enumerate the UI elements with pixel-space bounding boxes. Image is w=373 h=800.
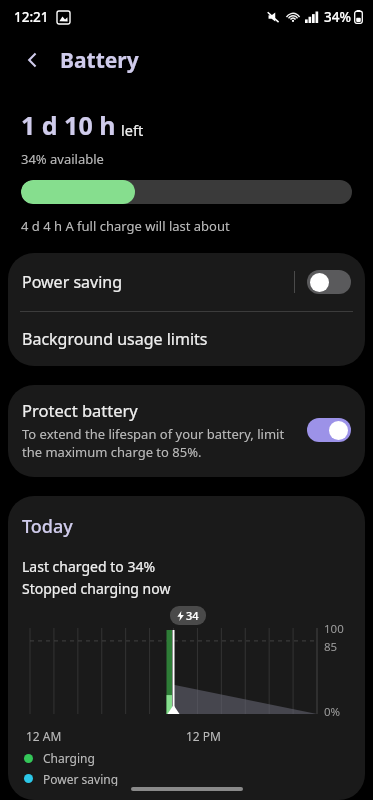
staticText: Protect battery bbox=[22, 399, 138, 421]
button[interactable]: Background usage limits bbox=[8, 312, 365, 366]
staticText: Background usage limits bbox=[22, 328, 208, 350]
staticText: 12 AM bbox=[26, 728, 62, 744]
staticText: 34 bbox=[186, 608, 199, 623]
staticText: Last charged to 34% bbox=[22, 557, 156, 576]
staticText: Today bbox=[22, 514, 73, 539]
staticText: 85 bbox=[324, 639, 338, 655]
button[interactable]: Back bbox=[18, 45, 48, 75]
staticText: Power saving bbox=[43, 771, 119, 786]
staticText: To extend the lifespan of your battery, … bbox=[22, 425, 297, 461]
button[interactable]: Toggle on bbox=[307, 418, 351, 442]
button[interactable]: Today bbox=[8, 496, 365, 800]
staticText: 100 bbox=[324, 621, 344, 637]
button[interactable]: Protect battery bbox=[8, 385, 365, 477]
staticText: 34% available bbox=[21, 150, 104, 168]
staticText: 4 d 4 h A full charge will last about bbox=[21, 217, 230, 235]
staticText: Power saving bbox=[22, 271, 294, 293]
staticText: left bbox=[121, 120, 144, 140]
button[interactable]: Toggle off bbox=[307, 270, 351, 294]
staticText: 34% bbox=[324, 8, 351, 26]
staticText: 12:21 bbox=[14, 8, 49, 26]
staticText: Stopped charging now bbox=[22, 579, 171, 598]
staticText: Charging bbox=[43, 750, 95, 766]
button[interactable]: Power saving bbox=[8, 253, 365, 311]
staticText: 1 d 10 h bbox=[21, 108, 116, 142]
staticText: 12 PM bbox=[186, 728, 221, 744]
staticText: Battery bbox=[60, 46, 139, 75]
staticText: 0% bbox=[324, 704, 341, 720]
